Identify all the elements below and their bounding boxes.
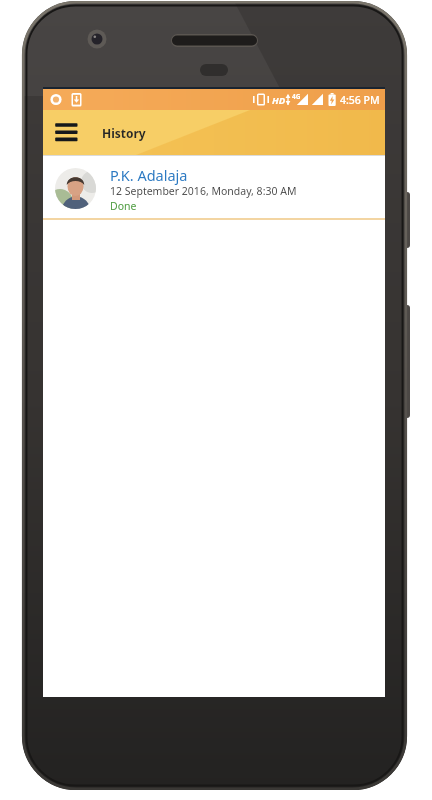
staticText: HD	[272, 94, 286, 107]
staticText: 4G	[292, 92, 301, 101]
staticText: 4:56 PM	[340, 93, 380, 107]
staticText: P.K. Adalaja	[110, 165, 188, 185]
button[interactable]: P.K. Adalaja	[43, 156, 385, 220]
button[interactable]	[49, 117, 85, 149]
staticText: Done	[110, 199, 137, 213]
staticText: History	[102, 125, 146, 141]
staticText: 12 September 2016, Monday, 8:30 AM	[110, 184, 297, 198]
